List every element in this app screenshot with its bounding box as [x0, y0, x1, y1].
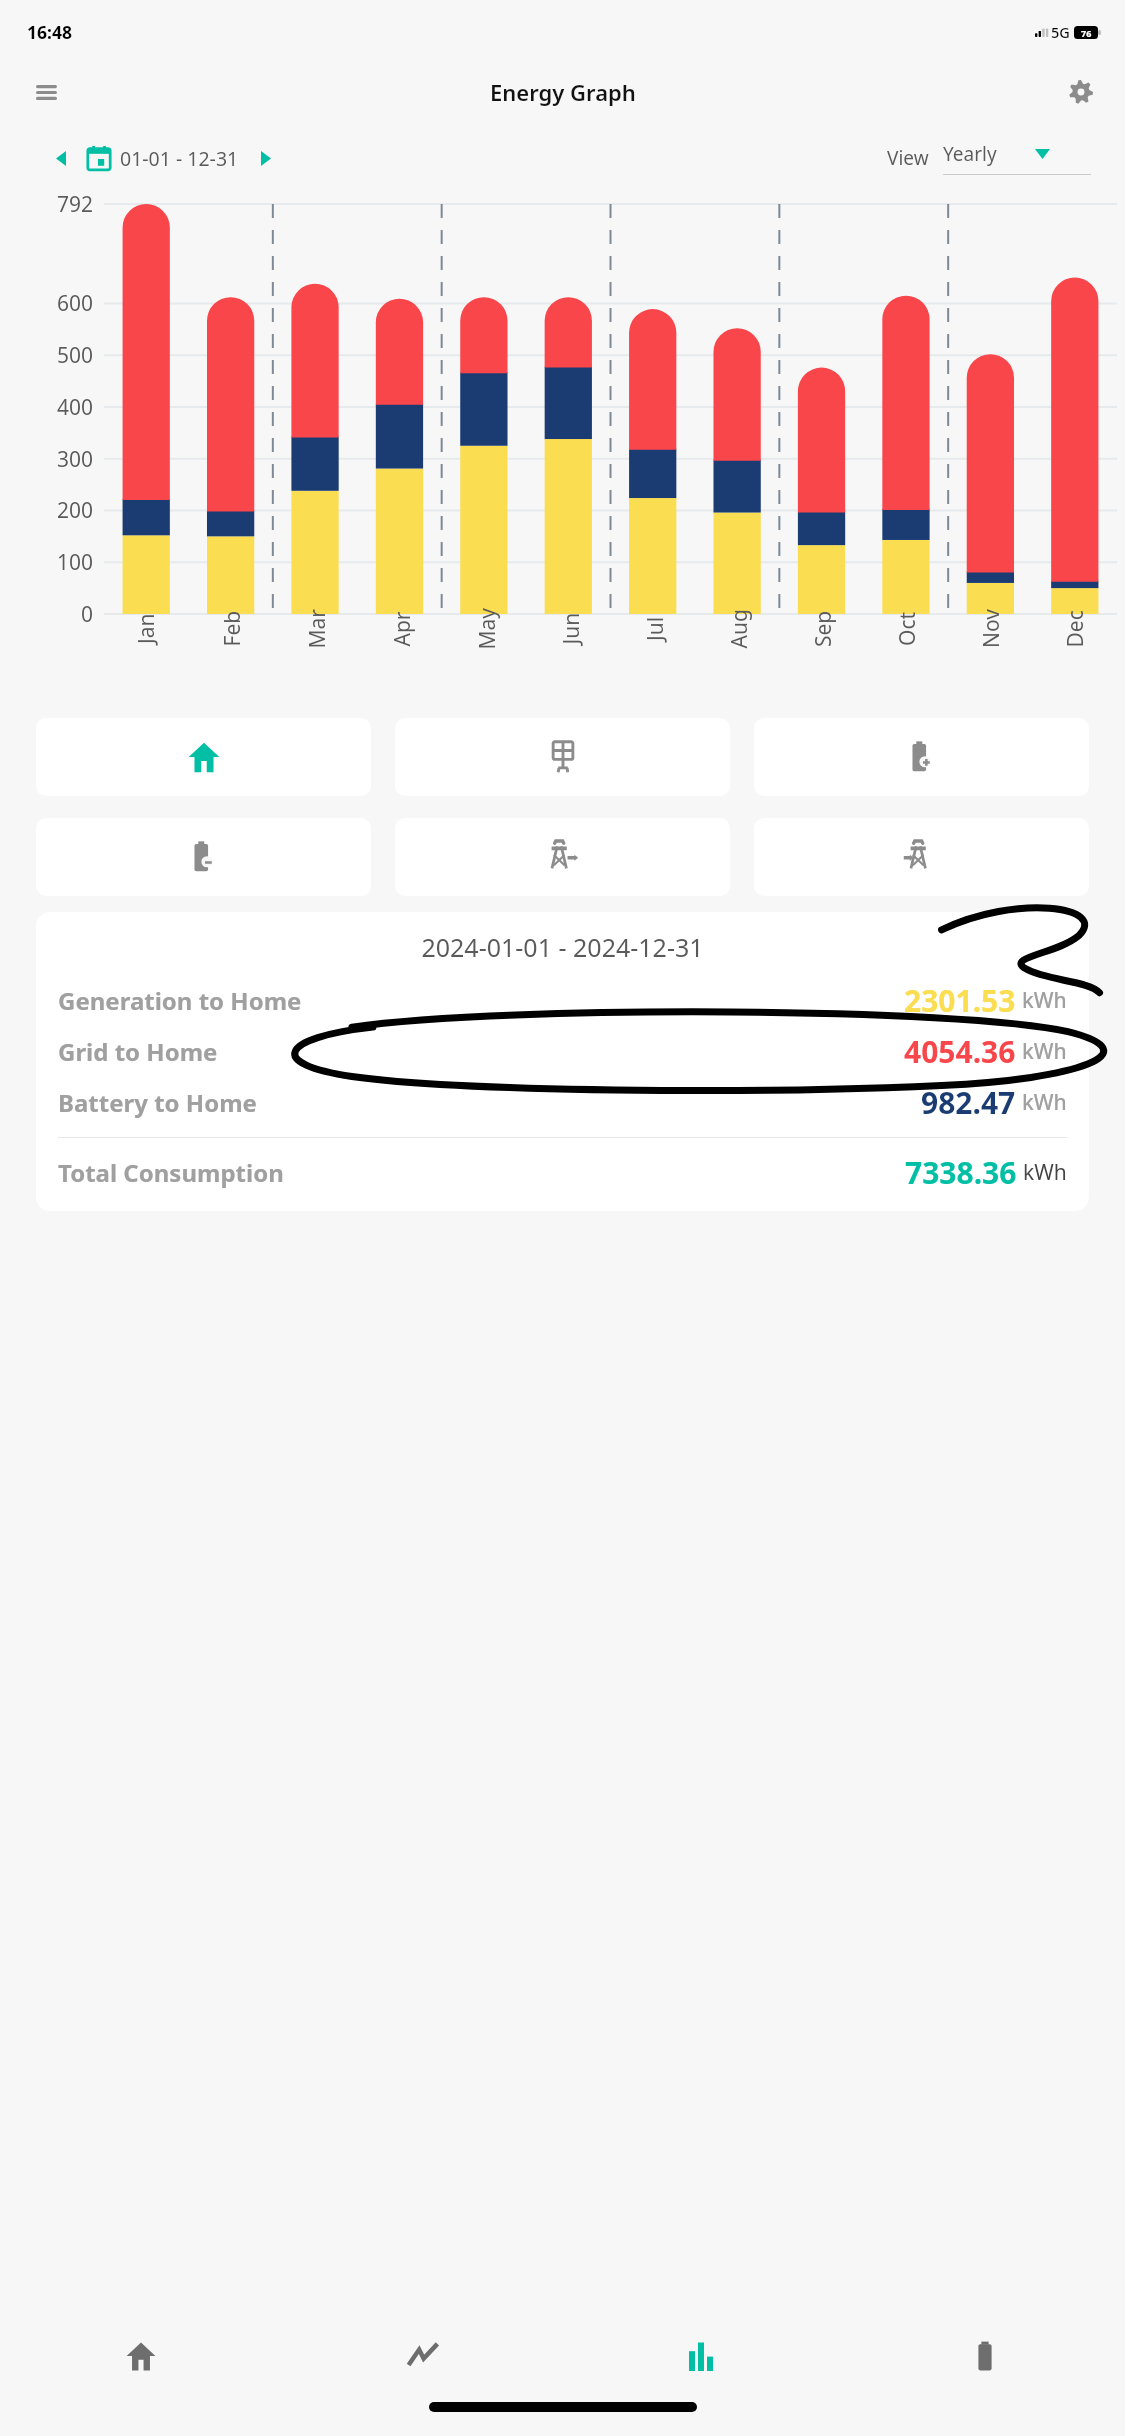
button[interactable]: Trends [282, 2310, 563, 2402]
staticText: Aug [724, 608, 753, 648]
staticText: 400 [57, 393, 94, 422]
staticText: Grid to Home [58, 1035, 218, 1068]
staticText: Energy Graph [490, 77, 636, 107]
staticText: 7338.36 [905, 1152, 1017, 1193]
staticText: 792 [57, 190, 94, 219]
staticText: Feb [217, 610, 246, 646]
staticText: 01-01 - 12-31 [120, 145, 239, 172]
staticText: Jan [132, 613, 161, 644]
button[interactable]: Statistics [563, 2310, 844, 2402]
staticText: 982.47 [921, 1082, 1016, 1123]
staticText: 300 [57, 445, 94, 474]
staticText: kWh [1023, 1158, 1067, 1187]
staticText: 600 [57, 289, 94, 318]
staticText: 200 [57, 496, 94, 525]
staticText: 2024-01-01 - 2024-12-31 [58, 930, 1067, 964]
staticText: 0 [81, 600, 94, 629]
staticText: Mar [302, 608, 331, 648]
staticText: 500 [57, 341, 94, 370]
staticText: 4054.36 [904, 1031, 1016, 1072]
button[interactable]: 01-01 - 12-31 [86, 145, 239, 172]
staticText: Oct [893, 611, 922, 646]
staticText: 16:48 [27, 20, 72, 44]
staticText: Jun [556, 612, 585, 644]
button[interactable]: Settings [1057, 68, 1105, 116]
staticText: Nov [977, 609, 1006, 648]
button[interactable]: Previous period [46, 143, 76, 173]
button[interactable]: Yearly [943, 141, 1091, 175]
staticText: View [887, 145, 929, 171]
button[interactable]: Menu [22, 68, 70, 116]
staticText: 5G [1051, 22, 1070, 42]
button[interactable]: Battery charge [754, 718, 1089, 796]
button[interactable]: Battery [844, 2310, 1125, 2402]
staticText: kWh [1022, 1088, 1067, 1117]
button[interactable]: Import from grid [754, 818, 1089, 896]
staticText: Yearly [943, 141, 1035, 167]
staticText: May [472, 607, 501, 649]
button[interactable]: Home consumption [36, 718, 371, 796]
staticText: Dec [1060, 609, 1089, 647]
staticText: Total Consumption [58, 1156, 284, 1189]
staticText: 100 [57, 548, 94, 577]
button[interactable]: Next period [251, 143, 281, 173]
staticText: kWh [1022, 1037, 1067, 1066]
staticText: Apr [387, 610, 416, 646]
staticText: Battery to Home [58, 1086, 257, 1119]
button[interactable]: Solar generation [395, 718, 730, 796]
staticText: 2301.53 [904, 980, 1016, 1021]
staticText: 76 [1081, 27, 1092, 39]
button[interactable]: Export to grid [395, 818, 730, 896]
button[interactable]: Battery discharge [36, 818, 371, 896]
staticText: Jul [641, 616, 670, 641]
button[interactable]: Home [0, 2310, 282, 2402]
staticText: kWh [1022, 986, 1067, 1015]
staticText: Generation to Home [58, 984, 302, 1017]
staticText: Sep [809, 610, 838, 647]
